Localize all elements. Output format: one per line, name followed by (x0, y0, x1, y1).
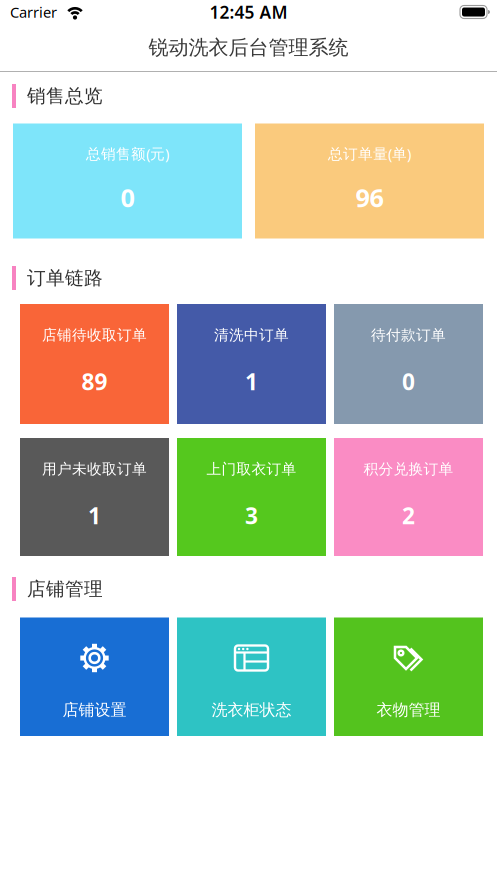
staticText: 0 (120, 181, 134, 214)
button[interactable]: 上门取衣订单 (177, 438, 326, 556)
staticText: 2 (402, 500, 415, 530)
button[interactable]: 待付款订单 (334, 304, 483, 424)
button[interactable]: 总销售额(元) (13, 123, 242, 238)
button[interactable]: 店铺待收取订单 (20, 304, 169, 424)
button[interactable]: 衣物管理 (334, 617, 483, 736)
staticText: 洗衣柜状态 (211, 700, 291, 720)
button[interactable]: 清洗中订单 (177, 304, 326, 424)
staticText: Carrier (10, 2, 57, 22)
staticText: 店铺管理 (27, 577, 103, 600)
button[interactable]: 店铺设置 (20, 617, 169, 736)
button[interactable]: 洗衣柜状态 (177, 617, 326, 736)
staticText: 1 (245, 366, 258, 396)
staticText: 0 (402, 366, 415, 396)
staticText: 上门取衣订单 (206, 460, 296, 478)
staticText: 锐动洗衣后台管理系统 (148, 35, 348, 60)
button[interactable]: 用户未收取订单 (20, 438, 169, 556)
staticText: 12:45 AM (209, 0, 287, 23)
staticText: 89 (81, 366, 107, 396)
staticText: 订单链路 (27, 266, 103, 289)
staticText: 用户未收取订单 (42, 460, 147, 478)
staticText: 店铺待收取订单 (42, 326, 147, 344)
staticText: 销售总览 (27, 84, 103, 107)
staticText: 总销售额(元) (86, 144, 169, 163)
staticText: 1 (88, 500, 101, 530)
staticText: 清洗中订单 (214, 326, 289, 344)
staticText: 衣物管理 (376, 700, 440, 720)
staticText: 总订单量(单) (328, 144, 411, 163)
staticText: 积分兑换订单 (363, 460, 453, 478)
button[interactable]: 总订单量(单) (255, 123, 484, 238)
staticText: 待付款订单 (371, 326, 446, 344)
staticText: 96 (355, 181, 383, 214)
staticText: 店铺设置 (62, 700, 126, 720)
button[interactable]: 积分兑换订单 (334, 438, 483, 556)
staticText: 3 (245, 500, 258, 530)
